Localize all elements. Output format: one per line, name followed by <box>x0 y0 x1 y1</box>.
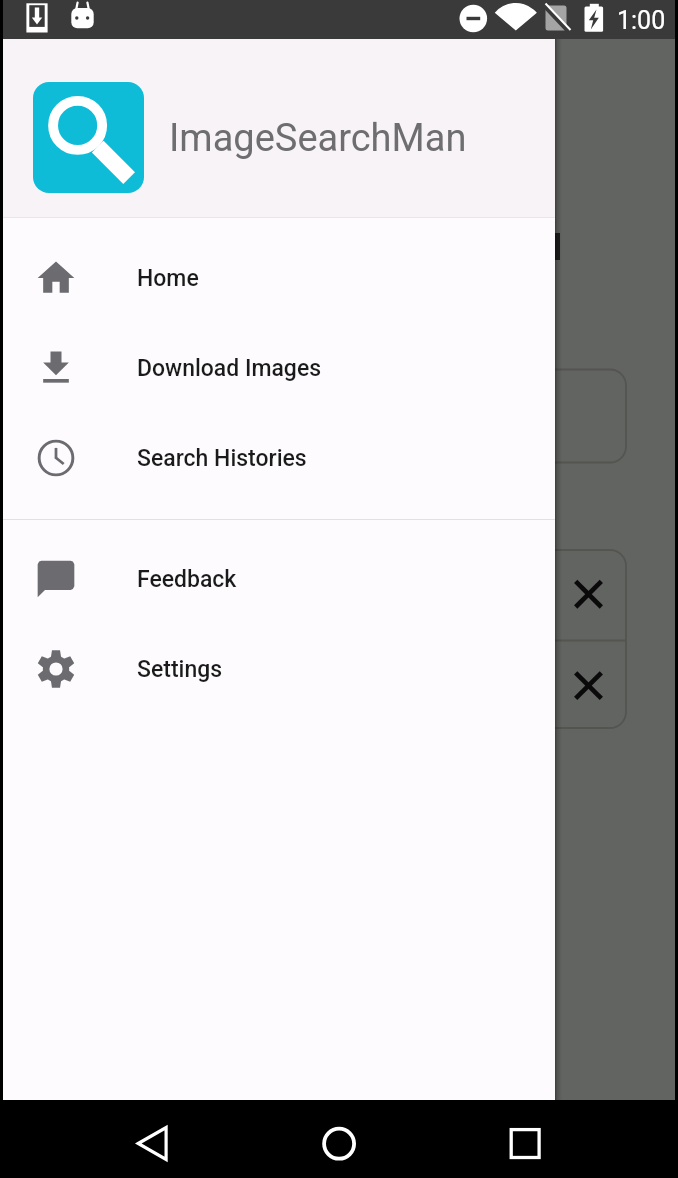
staticText: Settings <box>137 656 223 683</box>
staticText: Feedback <box>137 566 237 593</box>
staticText: Search Histories <box>137 445 307 472</box>
button[interactable]: Feedback <box>0 534 555 624</box>
staticText: 1:00 <box>617 6 666 35</box>
button[interactable]: Home <box>0 233 555 323</box>
button[interactable]: ImageSearchMan <box>0 39 555 217</box>
button[interactable]: Back <box>103 1100 213 1178</box>
button[interactable]: Download Images <box>0 323 555 413</box>
staticText: Home <box>137 265 199 292</box>
button[interactable]: Home <box>283 1100 393 1178</box>
button[interactable]: Search Histories <box>0 413 555 503</box>
staticText: ImageSearchMan <box>169 116 467 161</box>
button[interactable]: Recent apps <box>470 1100 580 1178</box>
staticText: Download Images <box>137 355 322 382</box>
button[interactable]: Settings <box>0 624 555 714</box>
